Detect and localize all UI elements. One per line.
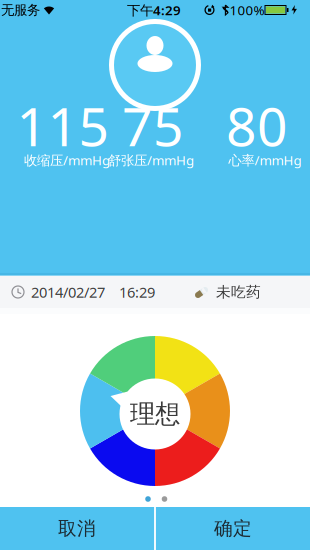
staticText: 舒张压/mmHg [108,151,194,169]
button[interactable]: 用户头像 [109,19,201,111]
staticText: 下午4:29 [127,1,181,19]
button[interactable]: 是否吃药 [194,276,261,308]
staticText: 取消 [58,517,96,540]
staticText: 心率/mmHg [228,151,301,169]
button[interactable]: 取消 [0,507,154,550]
staticText: 未吃药 [216,283,261,301]
staticText: 2014/02/27 [31,282,105,302]
staticText: 无服务 [1,2,40,18]
staticText: 确定 [214,517,252,540]
staticText: 收缩压/mmHg [24,151,110,169]
staticText: 16:29 [119,282,155,302]
staticText: 100% [229,1,264,19]
button[interactable]: 测量时间 [11,276,155,308]
staticText: 115 [16,90,109,161]
staticText: 75 [122,90,184,161]
staticText: 80 [226,90,288,161]
staticText: 理想 [130,398,180,429]
button[interactable]: 确定 [156,507,310,550]
